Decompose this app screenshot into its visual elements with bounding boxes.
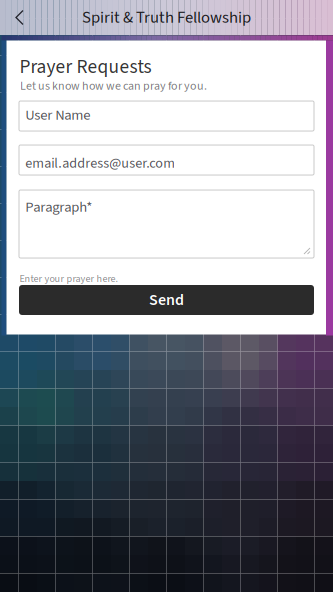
staticText: Prayer Requests — [19, 53, 151, 81]
button[interactable]: Send — [19, 285, 314, 315]
staticText: Send — [149, 289, 184, 311]
staticText: Spirit & Truth Fellowship — [82, 6, 251, 29]
button[interactable]: Paragraph* — [19, 190, 314, 258]
staticText: Let us know how we can pray for you. — [20, 77, 207, 95]
button[interactable]: email.address@user.com — [19, 145, 314, 175]
staticText: Enter your prayer here. — [19, 271, 118, 286]
staticText: email.address@user.com — [25, 153, 175, 173]
staticText: Paragraph* — [25, 197, 92, 218]
button[interactable]: User Name — [19, 101, 314, 131]
staticText: User Name — [25, 105, 90, 126]
button[interactable]: Back — [0, 0, 40, 35]
